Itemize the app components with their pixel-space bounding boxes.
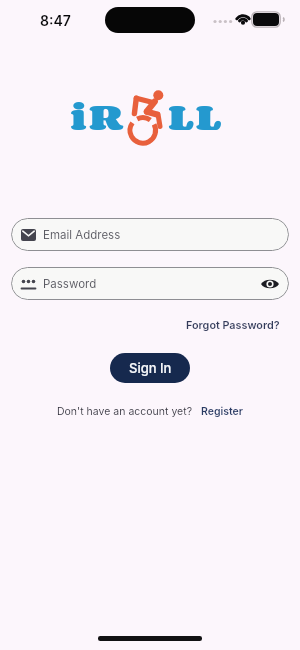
staticText: Don't have an account yet? [57, 405, 192, 418]
button[interactable]: Forgot Password? [186, 319, 280, 332]
button[interactable]: Sign In [110, 353, 190, 383]
staticText: Forgot Password? [186, 319, 280, 332]
button[interactable] [253, 267, 287, 300]
staticText: LL [168, 87, 224, 144]
staticText: iR [70, 87, 125, 144]
staticText: 8:47 [40, 12, 71, 29]
button[interactable]: Register [201, 405, 243, 418]
staticText: Sign In [129, 360, 172, 376]
staticText: Email Address [43, 228, 121, 242]
button[interactable]: Password [11, 267, 289, 300]
staticText: Register [201, 405, 243, 418]
staticText: Password [43, 277, 97, 291]
button[interactable]: Email Address [11, 218, 289, 251]
